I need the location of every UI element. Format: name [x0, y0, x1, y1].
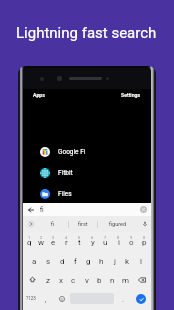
staticText: k: [125, 257, 130, 266]
button[interactable]: d: [55, 251, 69, 270]
button[interactable]: Clear search: [138, 204, 149, 215]
button[interactable]: b: [93, 270, 106, 289]
staticText: l: [140, 257, 142, 266]
button[interactable]: 0: [138, 232, 151, 251]
staticText: fi: [51, 221, 55, 227]
staticText: first: [78, 221, 88, 227]
staticText: b: [97, 276, 102, 285]
button[interactable]: 6: [86, 232, 99, 251]
button[interactable]: Backspace: [132, 270, 151, 289]
button[interactable]: 8: [112, 232, 125, 251]
button[interactable]: 9: [125, 232, 138, 251]
button[interactable]: k: [121, 251, 134, 270]
staticText: r: [65, 238, 68, 247]
button[interactable]: x: [54, 270, 67, 289]
button[interactable]: n: [106, 270, 119, 289]
staticText: d: [60, 257, 65, 266]
button[interactable]: 5: [73, 232, 86, 251]
staticText: h: [99, 257, 104, 266]
button[interactable]: first: [69, 216, 97, 232]
staticText: 3: [52, 235, 55, 239]
staticText: v: [85, 276, 89, 285]
staticText: a: [32, 257, 37, 266]
button[interactable]: Files: [23, 183, 151, 204]
button[interactable]: l: [134, 251, 147, 270]
staticText: 4: [65, 235, 68, 239]
button[interactable]: s: [41, 251, 55, 270]
button[interactable]: m: [119, 270, 132, 289]
staticText: .: [122, 296, 124, 304]
button[interactable]: 1: [23, 232, 35, 251]
button[interactable]: f: [69, 251, 82, 270]
button[interactable]: 7: [99, 232, 112, 251]
button[interactable]: Fitbit: [23, 162, 151, 183]
button[interactable]: 2: [35, 232, 47, 251]
staticText: 9: [130, 235, 133, 239]
staticText: 7: [104, 235, 107, 239]
button[interactable]: 4: [60, 232, 73, 251]
button[interactable]: g: [82, 251, 95, 270]
button[interactable]: More suggestions: [23, 216, 38, 232]
staticText: j: [114, 257, 116, 266]
button[interactable]: Emoji: [53, 289, 70, 308]
button[interactable]: c: [67, 270, 80, 289]
button[interactable]: z: [41, 270, 54, 289]
staticText: y: [91, 238, 95, 247]
staticText: t: [78, 238, 81, 247]
button[interactable]: h: [95, 251, 108, 270]
staticText: ,: [45, 296, 47, 304]
staticText: Settings: [121, 92, 141, 98]
staticText: u: [103, 238, 108, 247]
button[interactable]: Apps: [31, 90, 47, 100]
staticText: 6: [91, 235, 94, 239]
staticText: 5: [78, 235, 81, 239]
staticText: fi: [40, 206, 44, 214]
staticText: Fitbit: [58, 169, 73, 177]
staticText: Apps: [33, 92, 45, 98]
staticText: m: [122, 276, 130, 285]
staticText: ?123: [26, 296, 36, 301]
button[interactable]: Settings: [119, 90, 143, 100]
button[interactable]: Voice input: [138, 216, 151, 232]
staticText: Lightning fast search: [16, 24, 157, 42]
button[interactable]: ?123: [23, 289, 39, 308]
staticText: x: [59, 276, 63, 285]
staticText: i: [118, 238, 120, 247]
button[interactable]: Search: [136, 294, 146, 304]
staticText: 8: [117, 235, 120, 239]
staticText: Google Fi: [58, 148, 86, 156]
staticText: s: [46, 257, 51, 266]
button[interactable]: Shift: [23, 270, 41, 289]
staticText: Files: [58, 190, 72, 198]
button[interactable]: Back: [26, 205, 36, 215]
button[interactable]: 3: [47, 232, 60, 251]
button[interactable]: Google Fi: [23, 141, 151, 162]
button[interactable]: j: [108, 251, 121, 270]
staticText: q: [27, 238, 32, 247]
staticText: g: [86, 257, 91, 266]
staticText: o: [129, 238, 134, 247]
button[interactable]: fi: [38, 216, 68, 232]
button[interactable]: figured: [98, 216, 137, 232]
staticText: n: [110, 276, 115, 285]
staticText: c: [71, 276, 76, 285]
staticText: p: [142, 238, 147, 247]
staticText: e: [51, 238, 56, 247]
staticText: z: [46, 276, 50, 285]
staticText: figured: [109, 221, 126, 227]
staticText: 1: [28, 235, 31, 239]
staticText: 2: [40, 235, 43, 239]
button[interactable]: v: [80, 270, 93, 289]
button[interactable]: ,: [39, 289, 53, 308]
button[interactable]: a: [27, 251, 41, 270]
staticText: f: [74, 257, 77, 266]
staticText: w: [38, 238, 45, 247]
staticText: 0: [143, 235, 146, 239]
